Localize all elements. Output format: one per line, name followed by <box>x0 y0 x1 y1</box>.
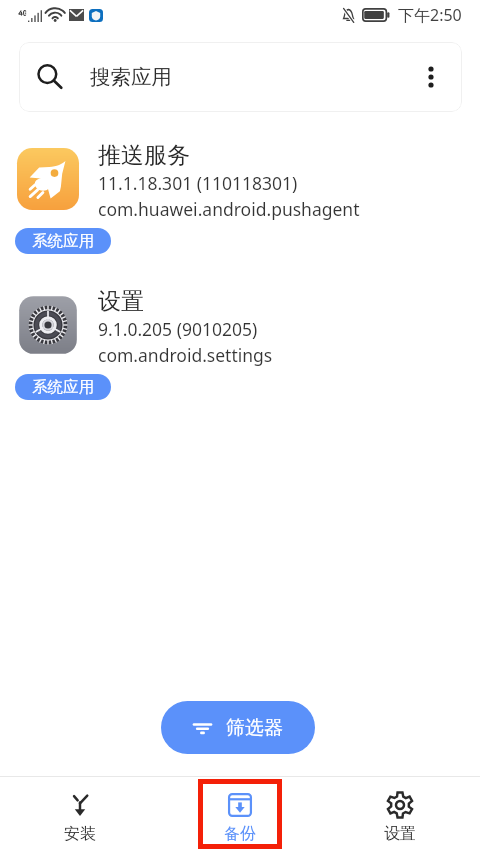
staticText: 安装 <box>64 824 96 844</box>
button[interactable]: Settings <box>320 776 480 853</box>
button[interactable]: 搜索应用 <box>19 42 462 112</box>
button[interactable]: Install <box>0 776 160 853</box>
button[interactable]: More options <box>418 64 444 90</box>
staticText: 筛选器 <box>226 716 283 740</box>
button[interactable]: Backup <box>160 776 320 853</box>
button[interactable]: 推送服务 <box>0 148 480 258</box>
button[interactable]: 设置 <box>0 294 480 404</box>
staticText: 备份 <box>224 824 256 844</box>
staticText: 9.1.0.205 (9010205) <box>98 317 258 341</box>
other: Settings <box>387 792 413 818</box>
staticText: 下午2:50 <box>398 4 462 26</box>
staticText: 搜索应用 <box>90 64 172 90</box>
staticText: 设置 <box>384 824 416 844</box>
staticText: com.android.settings <box>98 343 273 367</box>
button[interactable]: 筛选器 <box>161 701 315 754</box>
staticText: 设置 <box>98 287 144 316</box>
other: Install <box>67 792 93 818</box>
staticText: 系统应用 <box>32 231 94 251</box>
other: Backup <box>227 792 253 818</box>
staticText: 系统应用 <box>32 377 94 397</box>
staticText: 推送服务 <box>98 141 190 170</box>
staticText: 11.1.18.301 (110118301) <box>98 171 298 195</box>
staticText: com.huawei.android.pushagent <box>98 197 360 221</box>
